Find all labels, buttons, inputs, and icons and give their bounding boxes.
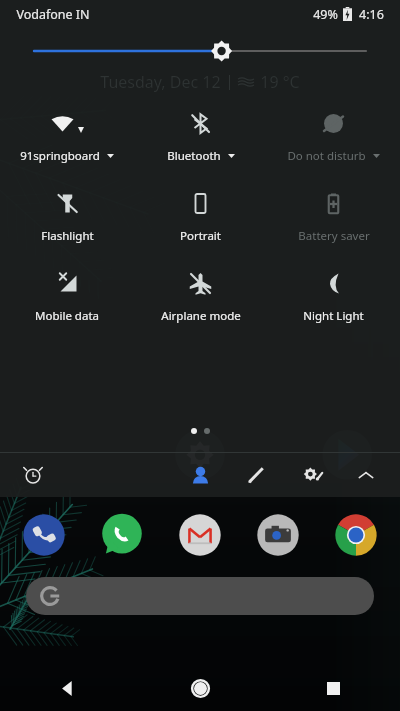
button[interactable]: Settings <box>296 458 330 492</box>
staticText: Tuesday, Dec 12 <box>100 71 221 93</box>
button[interactable]: Alarm <box>18 460 48 490</box>
staticText: Bluetooth <box>167 148 221 164</box>
staticText: Vodafone IN <box>16 6 90 23</box>
staticText: Night Light <box>303 308 364 324</box>
button[interactable]: Home <box>134 665 267 711</box>
button[interactable]: Brightness <box>0 38 400 64</box>
staticText: Portrait <box>180 228 221 244</box>
button[interactable]: Portrait <box>134 186 267 244</box>
button[interactable]: Phone <box>18 509 70 561</box>
button[interactable]: Chrome <box>330 509 382 561</box>
staticText: Do not disturb <box>287 148 366 164</box>
button[interactable]: Edit <box>240 459 272 491</box>
staticText: Airplane mode <box>161 308 241 324</box>
button[interactable]: WhatsApp <box>96 509 148 561</box>
button[interactable]: 91springboard <box>0 106 134 164</box>
button[interactable]: Night Light <box>267 266 400 324</box>
button[interactable]: Mobile data <box>0 266 134 324</box>
staticText: 49% <box>313 6 338 23</box>
button[interactable]: Flashlight <box>0 186 134 244</box>
button[interactable]: Search <box>26 577 374 615</box>
button[interactable]: Camera <box>252 509 304 561</box>
button[interactable]: Collapse <box>350 459 382 491</box>
staticText: Mobile data <box>35 308 99 324</box>
button[interactable]: Gmail <box>174 509 226 561</box>
button[interactable]: Airplane mode <box>134 266 267 324</box>
button[interactable]: Back <box>0 665 134 711</box>
staticText: 4:16 <box>359 6 384 23</box>
button[interactable]: User <box>184 459 216 491</box>
button[interactable]: Bluetooth <box>134 106 267 164</box>
staticText: Battery saver <box>298 228 370 244</box>
button[interactable]: Recents <box>267 665 400 711</box>
staticText: Flashlight <box>41 228 94 244</box>
staticText: 19 °C <box>260 71 300 93</box>
button[interactable]: Do not disturb <box>267 106 400 164</box>
button[interactable]: Battery saver <box>267 186 400 244</box>
staticText: 91springboard <box>20 148 100 164</box>
